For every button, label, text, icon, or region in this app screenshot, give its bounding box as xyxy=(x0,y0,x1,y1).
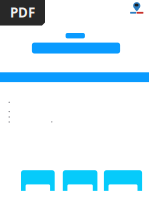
button[interactable]: PDF document xyxy=(0,0,45,25)
staticText: PDF xyxy=(10,3,35,21)
button[interactable]: Card xyxy=(104,170,142,191)
button[interactable]: Card xyxy=(21,170,55,191)
button[interactable]: Card xyxy=(63,170,97,191)
